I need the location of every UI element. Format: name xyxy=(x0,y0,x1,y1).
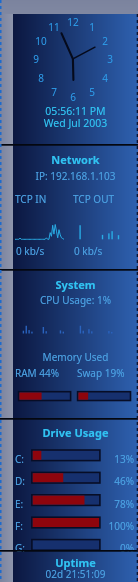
staticText: Network xyxy=(13,152,138,167)
staticText: 02d 21:51:09 xyxy=(13,567,138,581)
button[interactable]: System xyxy=(13,271,138,418)
staticText: 11 xyxy=(45,20,63,34)
staticText: 12 xyxy=(64,15,82,29)
button[interactable]: Drive Usage xyxy=(13,420,138,551)
staticText: 8 xyxy=(32,71,50,85)
staticText: C: xyxy=(15,452,35,466)
staticText: System xyxy=(13,277,138,292)
staticText: F: xyxy=(15,519,35,533)
staticText: 0% xyxy=(94,541,134,555)
staticText: Wed Jul 2003 xyxy=(13,116,138,130)
staticText: 0 kb/s xyxy=(16,244,76,258)
staticText: TCP OUT xyxy=(73,192,137,206)
button[interactable]: Network xyxy=(13,146,138,269)
staticText: 1 xyxy=(83,20,101,34)
button[interactable]: Analog clock xyxy=(13,14,138,144)
staticText: 7 xyxy=(45,85,63,99)
staticText: 100% xyxy=(94,519,134,533)
staticText: D: xyxy=(15,474,35,488)
staticText: 13% xyxy=(94,452,134,466)
staticText: Uptime xyxy=(13,555,138,570)
staticText: CPU Usage: 1% xyxy=(13,293,138,307)
staticText: 5 xyxy=(83,85,101,99)
staticText: 10 xyxy=(32,34,50,48)
staticText: IP: 192.168.1.103 xyxy=(13,169,138,183)
staticText: 4 xyxy=(96,71,114,85)
staticText: Drive Usage xyxy=(13,425,138,440)
staticText: RAM 44% xyxy=(15,366,77,380)
staticText: 46% xyxy=(94,474,134,488)
staticText: 9 xyxy=(27,52,45,66)
staticText: Swap 19% xyxy=(77,366,138,380)
staticText: 78% xyxy=(94,497,134,511)
staticText: Memory Used xyxy=(13,350,138,364)
staticText: 3 xyxy=(101,52,119,66)
staticText: 6 xyxy=(64,90,82,104)
staticText: 2 xyxy=(96,34,114,48)
staticText: E: xyxy=(15,497,35,511)
staticText: TCP IN xyxy=(15,192,75,206)
staticText: 0 kb/s xyxy=(74,244,134,258)
button[interactable]: Uptime xyxy=(13,552,138,582)
staticText: G: xyxy=(15,541,35,555)
staticText: 05:56:11 PM xyxy=(13,104,138,118)
